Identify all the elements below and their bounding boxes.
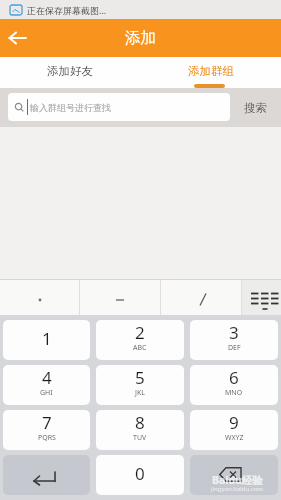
staticText: TUV <box>133 433 147 443</box>
staticText: 正在保存屏幕截图... <box>27 4 107 16</box>
button[interactable] <box>161 280 241 315</box>
staticText: 添加好友 <box>47 64 93 78</box>
staticText: 0 <box>135 462 145 485</box>
staticText: 输入群组号进行查找 <box>30 102 111 113</box>
staticText: 9 <box>229 411 239 434</box>
staticText: 添加群组 <box>188 64 234 78</box>
button[interactable] <box>242 280 281 315</box>
staticText: WXYZ <box>225 433 244 443</box>
button[interactable]: 添加群组 <box>140 57 281 88</box>
staticText: MNO <box>225 388 243 398</box>
button[interactable]: 5 <box>96 365 184 405</box>
button[interactable]: 4 <box>3 365 90 405</box>
staticText: Baidu经验 <box>212 473 263 487</box>
button[interactable]: 0 <box>96 455 184 495</box>
button[interactable]: 添加好友 <box>0 57 140 88</box>
staticText: 3 <box>229 321 239 344</box>
staticText: 5 <box>135 366 145 389</box>
button[interactable]: 2 <box>96 320 184 360</box>
staticText: 8 <box>135 411 145 434</box>
button[interactable]: 8 <box>96 410 184 450</box>
staticText: 2 <box>135 321 145 344</box>
button[interactable]: 6 <box>190 365 278 405</box>
button[interactable]: 9 <box>190 410 278 450</box>
staticText: jingyan.baidu.com <box>211 485 263 493</box>
staticText: 7 <box>42 411 52 434</box>
button[interactable]: 1 <box>3 320 90 360</box>
button[interactable] <box>0 280 79 315</box>
staticText: 添加 <box>125 28 156 48</box>
staticText: 搜索 <box>244 101 267 115</box>
button[interactable]: Baidu经验 <box>190 455 278 495</box>
staticText: 6 <box>229 366 239 389</box>
staticText: GHI <box>40 388 53 398</box>
button[interactable] <box>0 19 40 57</box>
staticText: 4 <box>42 366 52 389</box>
button[interactable] <box>80 280 160 315</box>
staticText: PQRS <box>38 433 56 443</box>
button[interactable]: 搜索 <box>230 88 281 127</box>
button[interactable]: 3 <box>190 320 278 360</box>
staticText: ABC <box>133 343 147 353</box>
staticText: 1 <box>42 327 52 350</box>
button[interactable]: 7 <box>3 410 90 450</box>
button[interactable] <box>3 455 90 495</box>
staticText: DEF <box>228 343 241 353</box>
staticText: JKL <box>135 388 145 398</box>
